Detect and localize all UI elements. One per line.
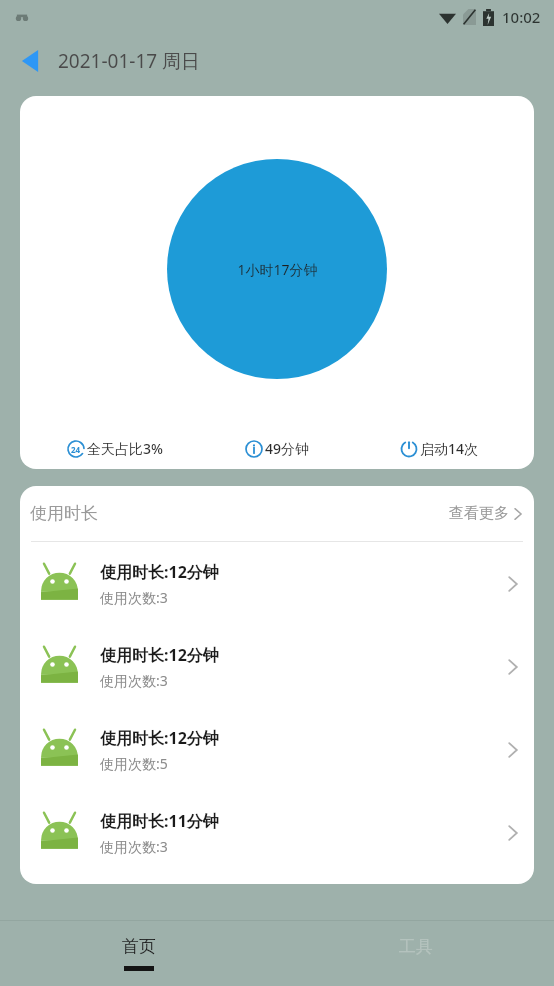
staticText: 使用次数:3	[100, 837, 168, 856]
staticText: 使用次数:3	[100, 671, 168, 690]
button[interactable]: 查看更多	[447, 498, 524, 529]
staticText: 2021-01-17 周日	[58, 48, 201, 74]
button[interactable]: 使用时长:12分钟	[20, 542, 534, 625]
staticText: 首页	[122, 936, 156, 957]
button[interactable]: 24	[34, 439, 196, 458]
button[interactable]: 首页	[0, 921, 277, 986]
staticText: 1小时17分钟	[237, 260, 318, 279]
button[interactable]: Back	[8, 39, 52, 83]
staticText: 10:02	[502, 7, 541, 27]
staticText: 使用时长:12分钟	[100, 727, 219, 749]
staticText: 启动14次	[420, 439, 479, 458]
staticText: 49分钟	[265, 439, 310, 458]
button[interactable]: 启动14次	[358, 439, 520, 458]
staticText: 使用时长	[30, 503, 98, 524]
button[interactable]: 使用时长:12分钟	[20, 708, 534, 791]
button[interactable]: 49分钟	[196, 439, 358, 458]
staticText: 使用次数:5	[100, 754, 168, 773]
staticText: 查看更多	[449, 504, 509, 523]
staticText: 使用时长:12分钟	[100, 644, 219, 666]
staticText: 工具	[399, 936, 433, 957]
staticText: 全天占比3%	[87, 439, 163, 458]
staticText: 使用时长:12分钟	[100, 561, 219, 583]
staticText: 24	[71, 444, 81, 455]
button[interactable]: 使用时长:11分钟	[20, 791, 534, 874]
button[interactable]: 使用时长:12分钟	[20, 625, 534, 708]
staticText: 使用次数:3	[100, 588, 168, 607]
staticText: 使用时长:11分钟	[100, 810, 219, 832]
